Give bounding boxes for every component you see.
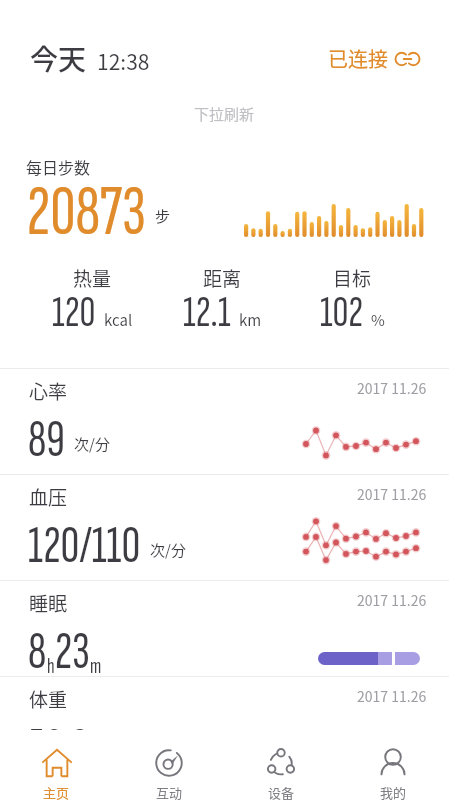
staticText: 2017 11.26 (357, 686, 427, 706)
staticText: 23 (55, 621, 90, 683)
staticText: 血压 (29, 483, 68, 511)
other: 互动 (154, 748, 184, 778)
staticText: m (90, 653, 102, 679)
staticText: 2017 11.26 (357, 378, 427, 398)
staticText: 已连接 (328, 44, 388, 73)
button[interactable]: 互动 (113, 730, 225, 800)
staticText: 8 (28, 621, 47, 683)
button[interactable]: 血压 (0, 474, 449, 580)
staticText: 20873 (27, 171, 146, 255)
staticText: kcal (104, 309, 133, 331)
staticText: 102 (320, 286, 363, 339)
staticText: 2017 11.26 (357, 484, 427, 504)
staticText: 距离 (203, 264, 242, 292)
other: 主页 (42, 748, 72, 778)
staticText: 我的 (380, 783, 407, 800)
staticText: 热量 (73, 264, 112, 292)
staticText: 体重 (29, 685, 68, 713)
other: Connected (394, 49, 421, 69)
staticText: 89 (28, 409, 65, 471)
staticText: % (371, 309, 385, 331)
staticText: 120 (52, 286, 96, 339)
staticText: 目标 (333, 264, 372, 292)
staticText: 互动 (156, 783, 183, 800)
staticText: 设备 (268, 783, 295, 800)
other: 我的 (378, 748, 408, 778)
button[interactable]: 设备 (225, 730, 337, 800)
staticText: h (47, 653, 55, 679)
staticText: 次/分 (150, 539, 186, 561)
other: 设备 (266, 748, 296, 778)
staticText: 睡眠 (29, 589, 68, 617)
button[interactable]: 体重 (0, 676, 449, 782)
staticText: 58.6 (28, 717, 89, 779)
staticText: 主页 (43, 783, 70, 800)
button[interactable]: 心率 (0, 368, 449, 474)
staticText: km (239, 309, 262, 331)
button[interactable]: 我的 (337, 730, 449, 800)
staticText: 今天 (30, 38, 87, 78)
staticText: 下拉刷新 (194, 103, 255, 125)
staticText: 12.1 (183, 286, 231, 339)
staticText: 步 (155, 205, 171, 227)
staticText: 心率 (29, 377, 68, 405)
staticText: 次/分 (74, 433, 110, 455)
staticText: 每日步数 (26, 155, 91, 178)
staticText: 2017 11.26 (357, 590, 427, 610)
staticText: 12:38 (97, 46, 150, 76)
button[interactable]: 已连接 (328, 44, 421, 73)
button[interactable]: 睡眠 (0, 580, 449, 676)
staticText: 120/110 (28, 515, 141, 577)
button[interactable]: 主页 (0, 730, 113, 800)
